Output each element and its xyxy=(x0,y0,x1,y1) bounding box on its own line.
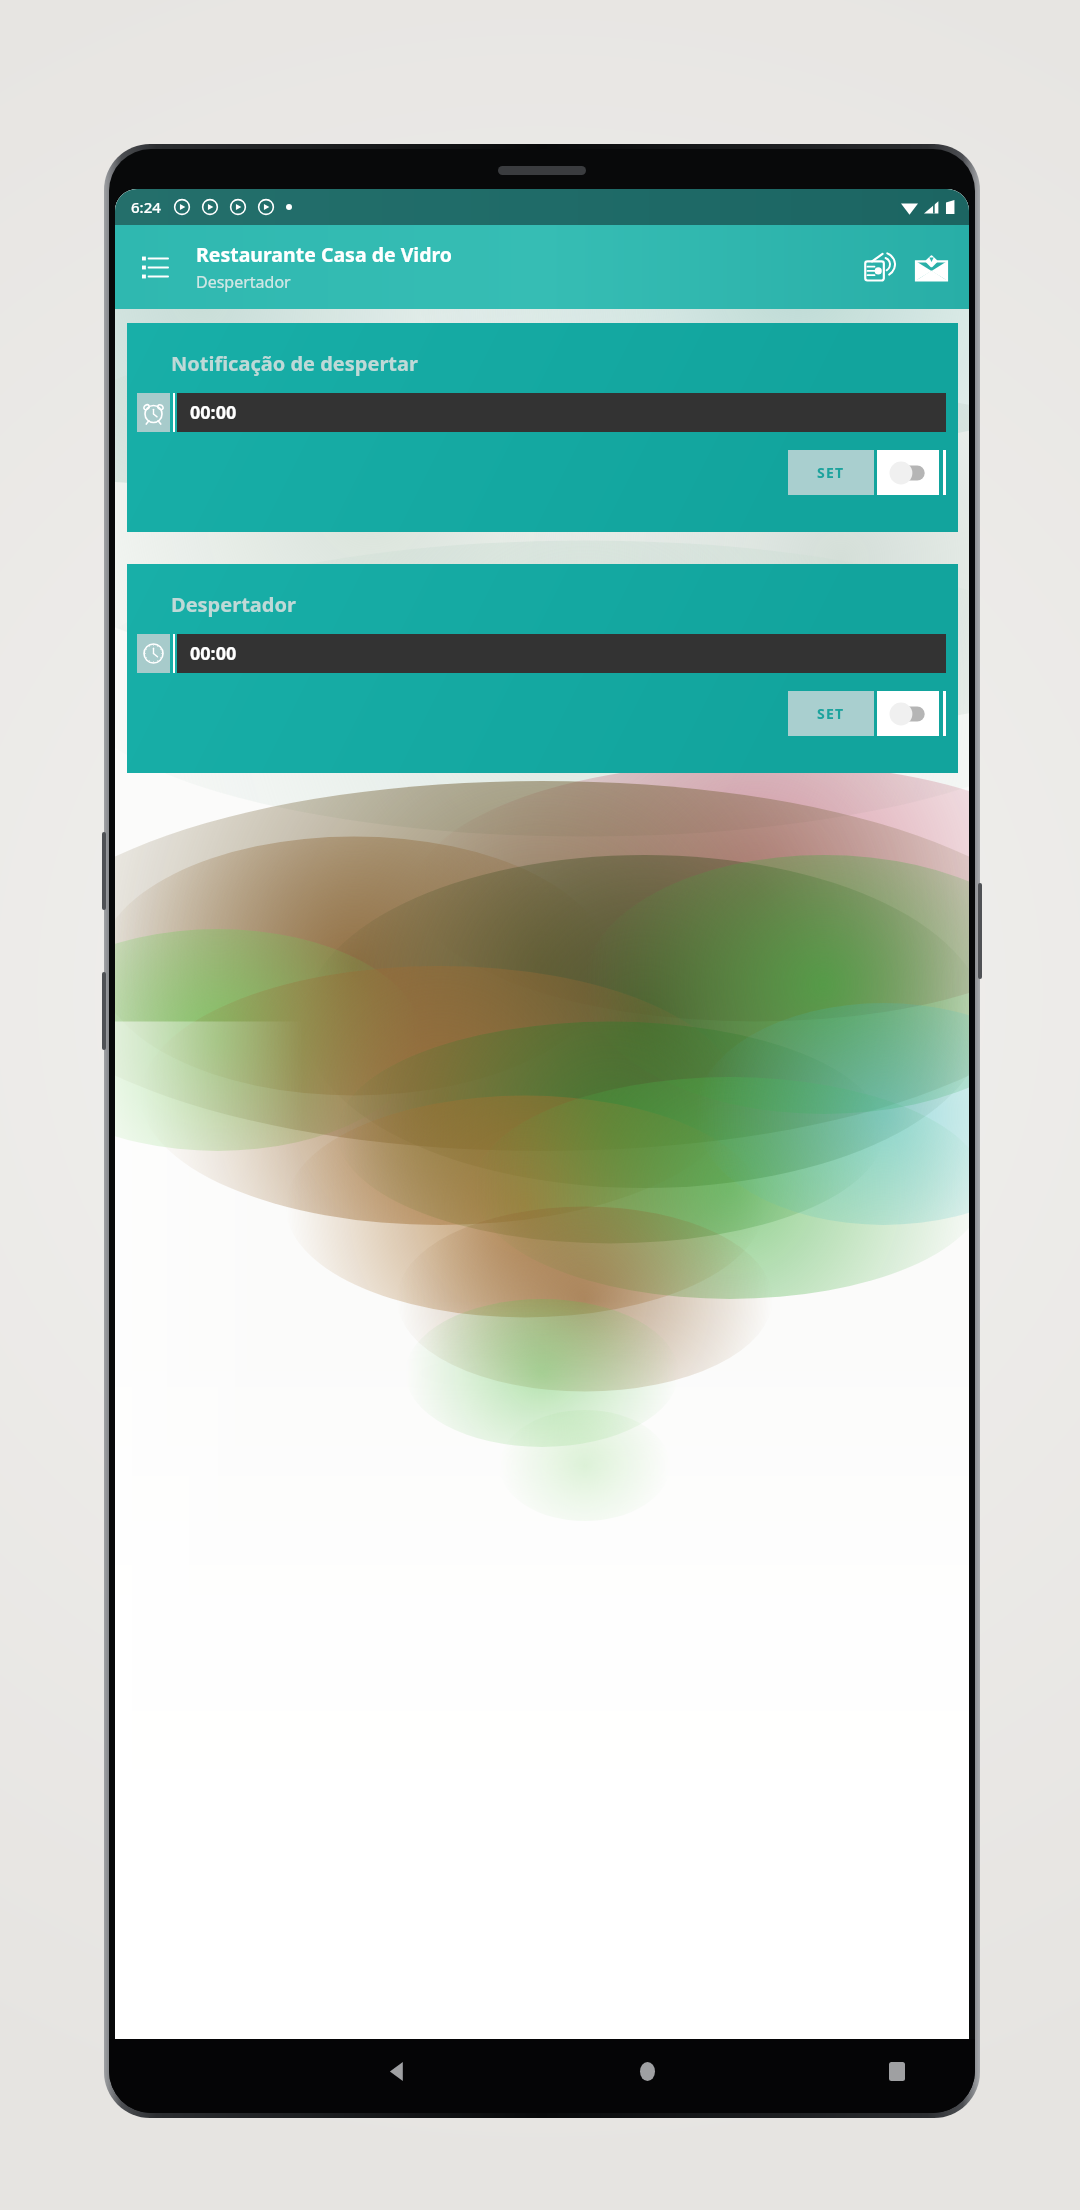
staticText: Notificação de despertar xyxy=(171,350,418,377)
button[interactable]: 00:00 xyxy=(177,393,946,432)
button[interactable]: Radio xyxy=(857,245,901,289)
staticText: 00:00 xyxy=(190,641,237,666)
button[interactable]: Recent apps xyxy=(877,2051,917,2091)
button[interactable]: Toggle alarm xyxy=(877,450,939,495)
button[interactable]: Alarm xyxy=(137,393,170,432)
staticText: 6:24 xyxy=(131,197,161,217)
button[interactable]: Back xyxy=(377,2051,417,2091)
button[interactable]: Toggle alarm xyxy=(877,691,939,736)
button[interactable]: SET xyxy=(788,691,874,736)
staticText: Restaurante Casa de Vidro xyxy=(196,241,453,268)
button[interactable]: 00:00 xyxy=(177,634,946,673)
staticText: Despertador xyxy=(196,271,291,293)
staticText: Despertador xyxy=(171,591,296,618)
staticText: SET xyxy=(817,704,845,723)
button[interactable]: Messages xyxy=(909,245,953,289)
button[interactable]: SET xyxy=(788,450,874,495)
staticText: 00:00 xyxy=(190,400,237,425)
button[interactable]: Home xyxy=(627,2051,667,2091)
staticText: SET xyxy=(817,463,845,482)
button[interactable]: Menu xyxy=(134,246,176,288)
button[interactable]: Clock xyxy=(137,634,170,673)
